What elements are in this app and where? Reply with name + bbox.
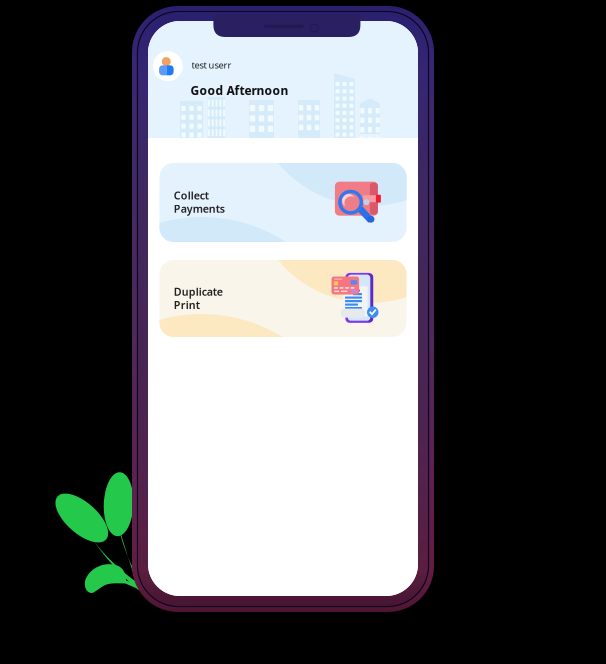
staticText: Duplicate xyxy=(174,284,223,299)
staticText: Print xyxy=(174,298,200,312)
staticText: Payments xyxy=(174,201,225,216)
staticText: Good Afternoon xyxy=(191,82,289,98)
staticText: test userr xyxy=(191,59,231,71)
button[interactable]: Collect xyxy=(159,163,406,242)
button[interactable]: Duplicate xyxy=(159,260,406,337)
staticText: Collect xyxy=(174,188,209,202)
